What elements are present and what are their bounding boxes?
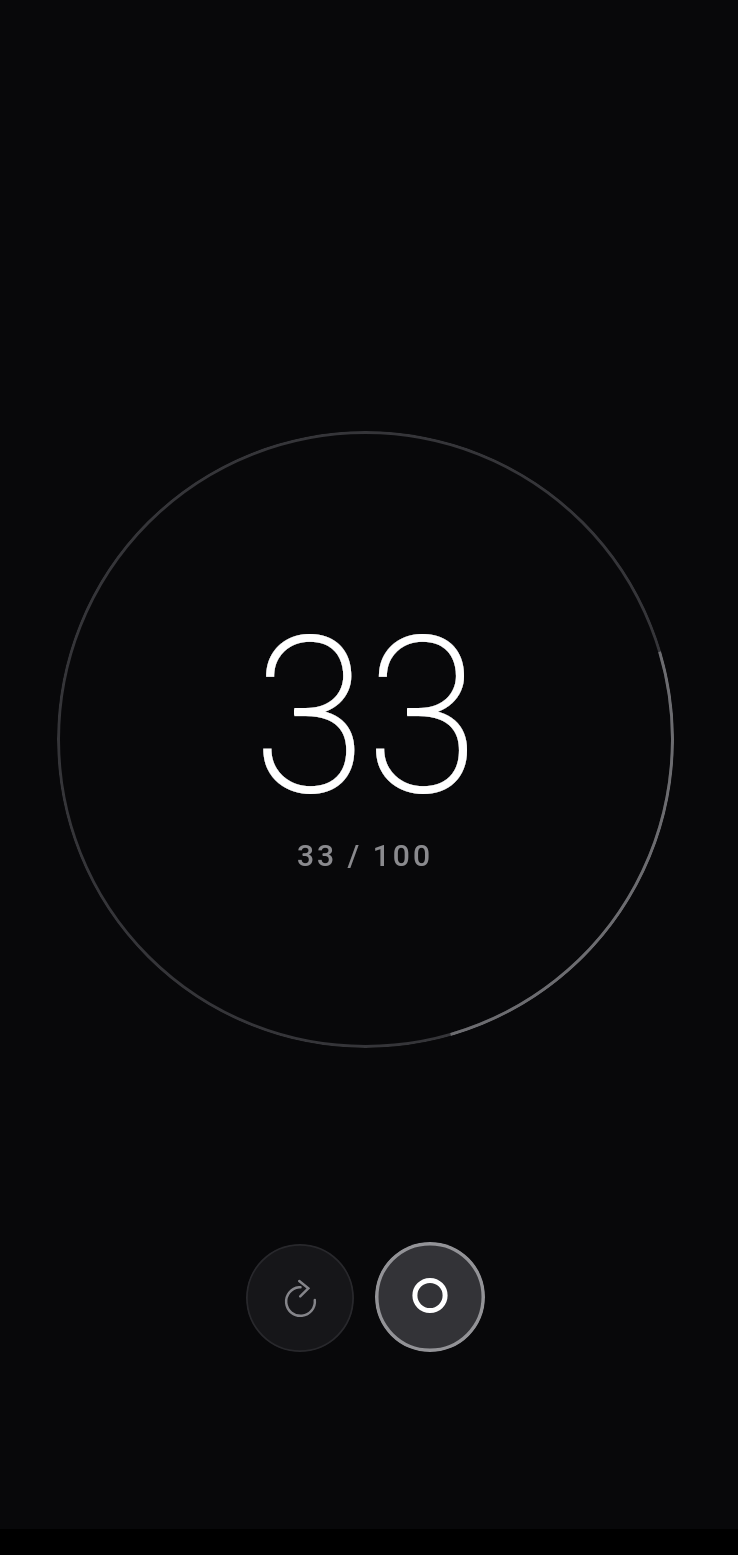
button[interactable]: Count: [375, 1242, 485, 1352]
staticText: 33: [253, 588, 479, 824]
button[interactable]: Reset: [246, 1244, 354, 1352]
staticText: 33 / 100: [297, 838, 433, 873]
button[interactable]: Counter: [57, 431, 674, 1048]
